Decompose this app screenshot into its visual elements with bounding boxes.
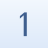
button[interactable]: 1 bbox=[0, 0, 48, 48]
